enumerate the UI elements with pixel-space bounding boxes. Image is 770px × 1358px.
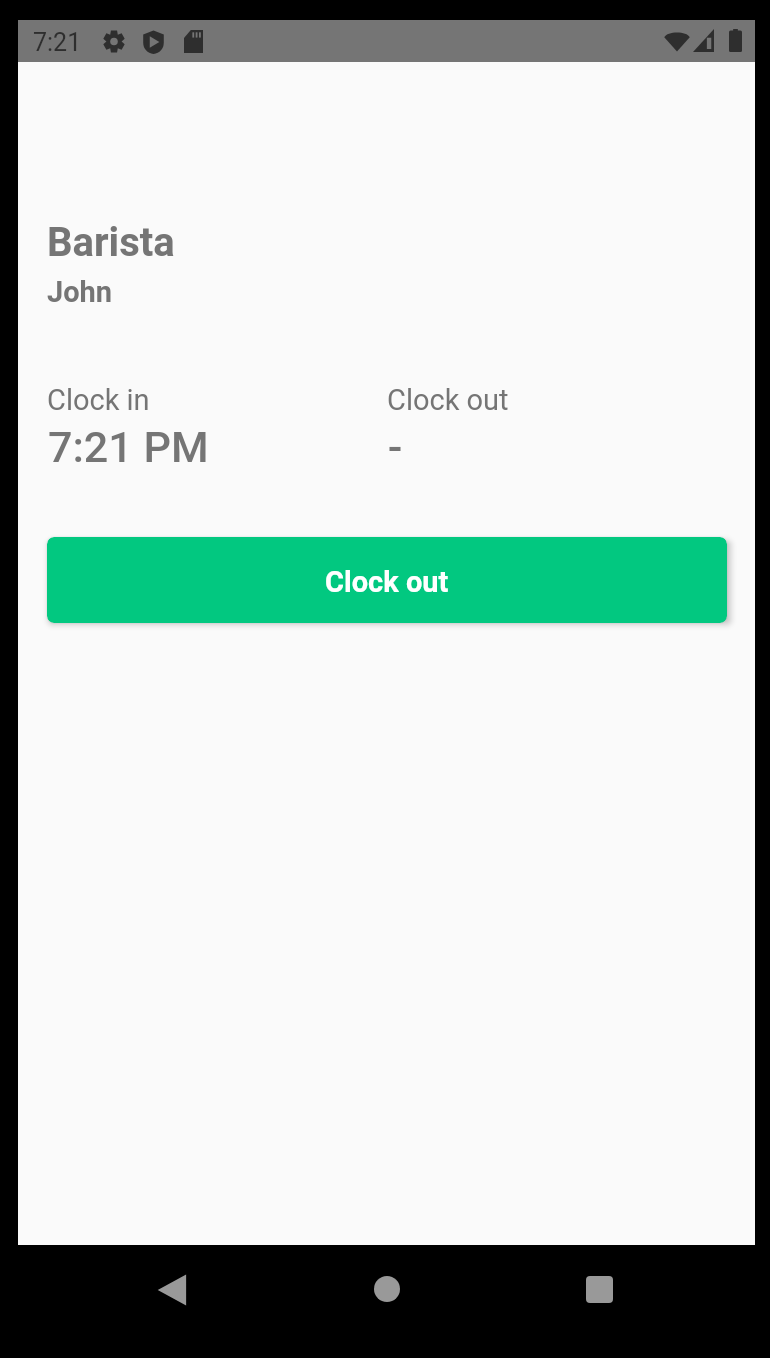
- button[interactable]: Home: [346, 1247, 428, 1331]
- button[interactable]: Recent apps: [558, 1247, 640, 1331]
- staticText: Barista: [47, 219, 175, 266]
- staticText: John: [47, 275, 113, 309]
- button[interactable]: Back: [131, 1248, 213, 1332]
- button[interactable]: Clock out: [47, 537, 727, 623]
- staticText: Clock out: [325, 565, 449, 599]
- staticText: 7:21 PM: [48, 422, 209, 472]
- staticText: -: [388, 422, 403, 472]
- staticText: Clock in: [47, 383, 150, 417]
- staticText: 7:21: [33, 28, 82, 57]
- staticText: Clock out: [387, 383, 509, 417]
